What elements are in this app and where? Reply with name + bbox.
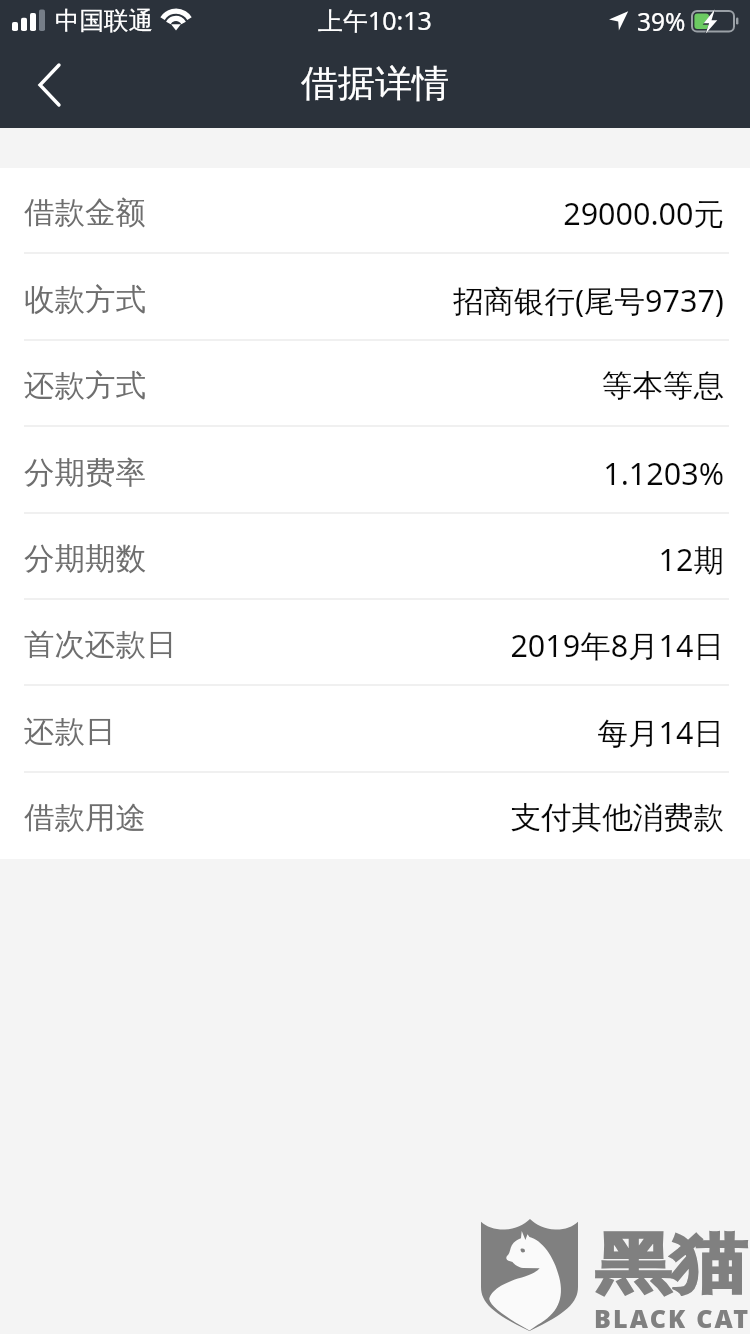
staticText: 1.1203% <box>603 452 724 494</box>
button[interactable]: 返回 <box>14 49 85 120</box>
staticText: 29000.00元 <box>563 192 724 234</box>
staticText: 上午10:13 <box>318 3 432 37</box>
staticText: 中国联通 <box>55 5 153 36</box>
button[interactable]: 首次还款日 <box>0 600 750 686</box>
staticText: 分期费率 <box>24 454 146 492</box>
button[interactable]: 还款日 <box>0 686 750 773</box>
staticText: 招商银行(尾号9737) <box>452 279 724 321</box>
button[interactable]: 分期费率 <box>0 427 750 514</box>
staticText: BLACK CAT <box>594 1301 750 1334</box>
staticText: 借据详情 <box>301 60 449 107</box>
staticText: 39% <box>637 5 686 38</box>
staticText: 还款日 <box>24 713 116 751</box>
staticText: 黑猫 <box>595 1223 747 1306</box>
staticText: 等本等息 <box>602 367 724 405</box>
staticText: 支付其他消费款 <box>510 799 724 837</box>
button[interactable]: 借款金额 <box>0 168 750 254</box>
staticText: 借款金额 <box>24 194 146 232</box>
button[interactable]: 分期期数 <box>0 514 750 600</box>
button[interactable]: 收款方式 <box>0 254 750 341</box>
staticText: 分期期数 <box>24 540 146 578</box>
staticText: 每月14日 <box>597 711 724 753</box>
staticText: 首次还款日 <box>24 626 177 664</box>
staticText: 还款方式 <box>24 367 146 405</box>
staticText: 借款用途 <box>24 799 146 837</box>
staticText: 12期 <box>658 538 724 580</box>
staticText: 2019年8月14日 <box>510 624 724 666</box>
button[interactable]: 还款方式 <box>0 341 750 427</box>
staticText: 收款方式 <box>24 281 146 319</box>
button[interactable]: 借款用途 <box>0 773 750 859</box>
